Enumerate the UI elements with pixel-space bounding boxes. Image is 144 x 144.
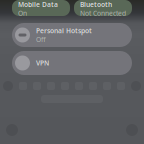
staticText: Not Connected xyxy=(80,9,126,18)
staticText: Off xyxy=(36,35,46,44)
button[interactable]: Bluetooth xyxy=(74,0,132,16)
staticText: VPN xyxy=(36,59,49,67)
staticText: On xyxy=(18,9,27,18)
button[interactable]: VPN xyxy=(12,51,132,75)
staticText: Personal Hotspot xyxy=(36,26,92,35)
staticText: Mobile Data xyxy=(18,0,58,9)
button[interactable]: Personal Hotspot xyxy=(12,23,132,47)
staticText: Bluetooth xyxy=(80,0,112,9)
button[interactable]: Mobile Data xyxy=(12,0,70,16)
